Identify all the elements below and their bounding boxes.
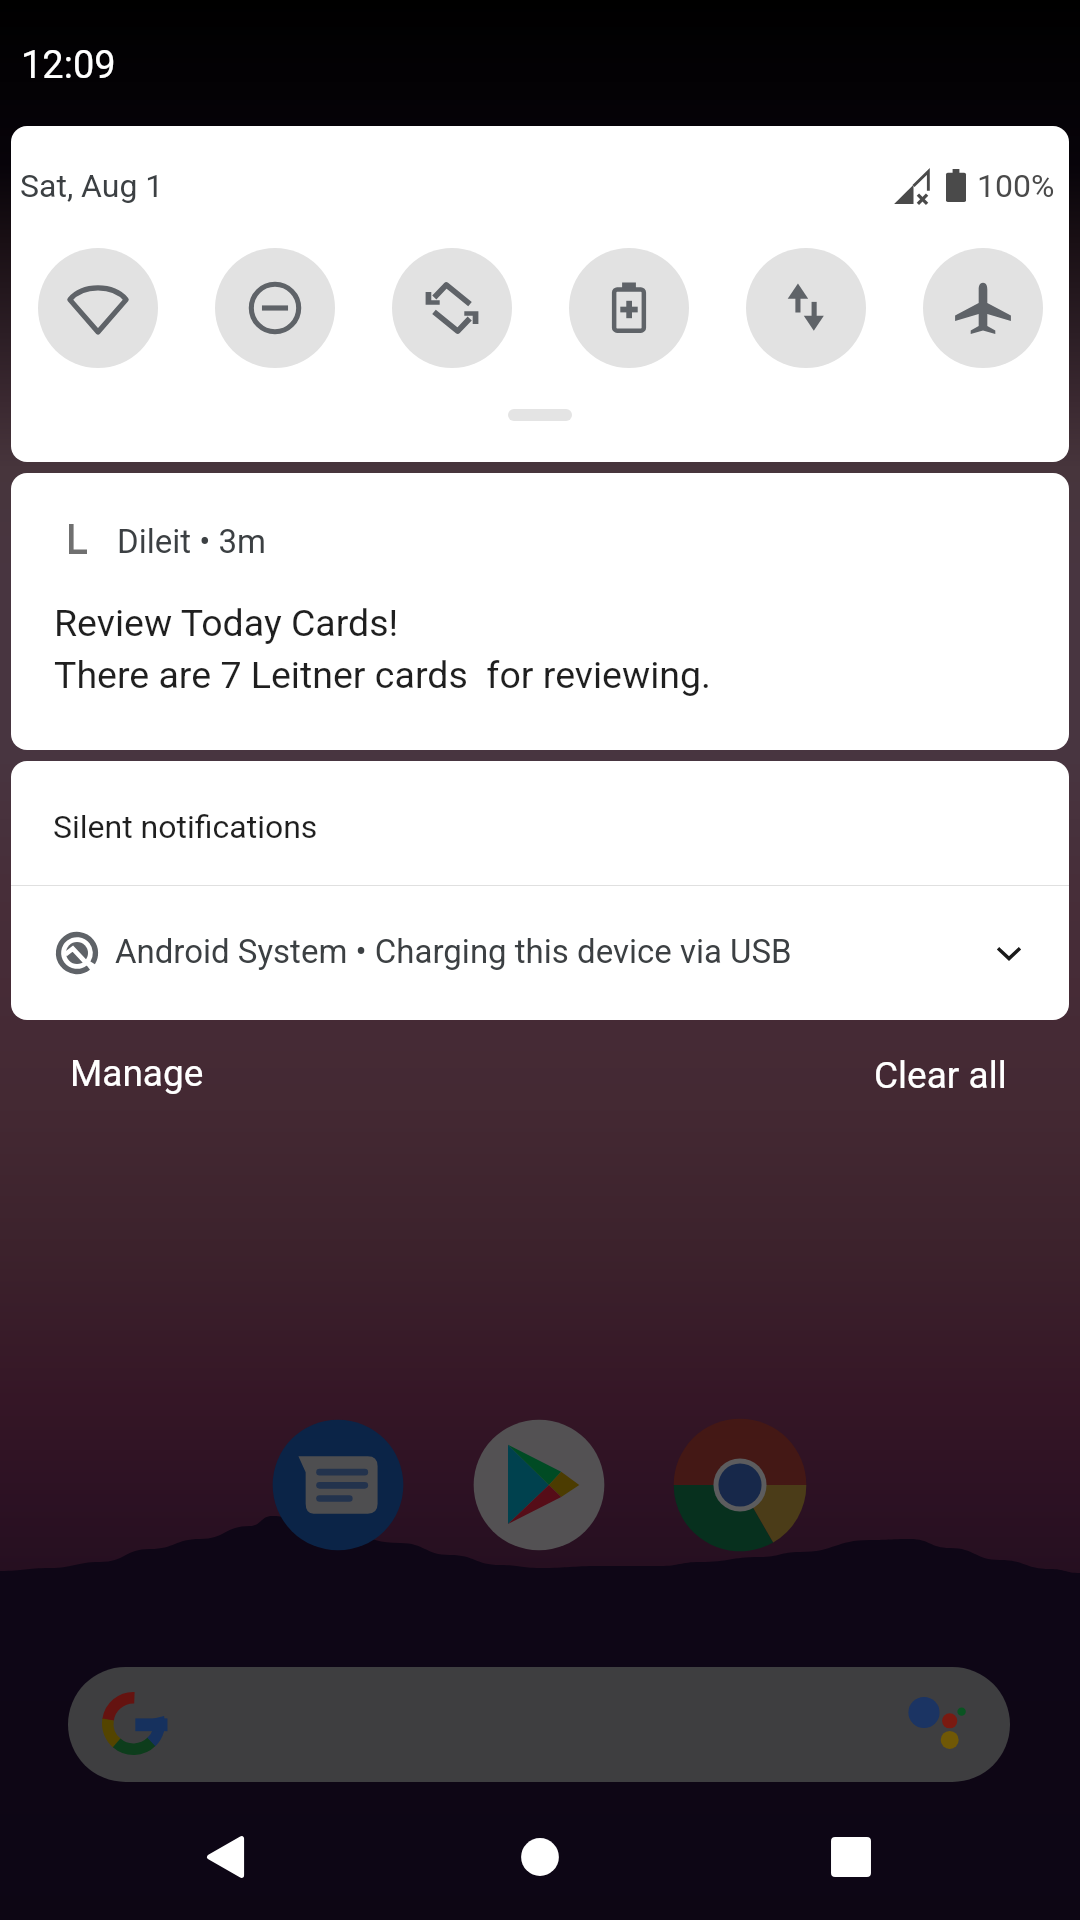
staticText: Sat, Aug 1 — [20, 167, 164, 205]
staticText: Android System • Charging this device vi… — [115, 932, 792, 971]
staticText: Review Today Cards! — [54, 601, 399, 645]
staticText: 100% — [977, 167, 1055, 205]
button[interactable]: Android System • Charging this device vi… — [11, 886, 1069, 1020]
staticText: Dileit • 3m — [117, 522, 267, 561]
other: Expand — [991, 935, 1027, 971]
button[interactable]: Dileit • 3m — [11, 473, 1069, 750]
button[interactable]: Chrome — [673, 1418, 807, 1552]
button[interactable]: Manage — [30, 1030, 244, 1117]
button[interactable]: Google Assistant — [68, 1667, 1010, 1782]
button[interactable]: Back — [181, 1812, 271, 1902]
button[interactable]: Recents — [806, 1812, 896, 1902]
staticText: Manage — [70, 1052, 204, 1095]
staticText: There are 7 Leitner cards for reviewing. — [54, 653, 711, 697]
button[interactable]: Do not disturb — [215, 248, 335, 368]
button[interactable]: Play Store — [473, 1419, 605, 1551]
button[interactable]: Clear all — [834, 1032, 1047, 1119]
staticText: Silent notifications — [53, 808, 318, 846]
button[interactable]: Wi-Fi — [38, 248, 158, 368]
button[interactable]: Messages — [272, 1419, 404, 1551]
staticText: 12:09 — [21, 43, 116, 88]
button[interactable]: Airplane mode — [923, 248, 1043, 368]
button[interactable]: Mobile data — [746, 248, 866, 368]
staticText: Clear all — [874, 1054, 1007, 1097]
other: Google Assistant — [904, 1685, 984, 1765]
button[interactable]: Silent notifications — [11, 761, 1069, 885]
button[interactable]: Home — [495, 1812, 585, 1902]
button[interactable]: Battery saver — [569, 248, 689, 368]
button[interactable]: Auto rotate — [392, 248, 512, 368]
